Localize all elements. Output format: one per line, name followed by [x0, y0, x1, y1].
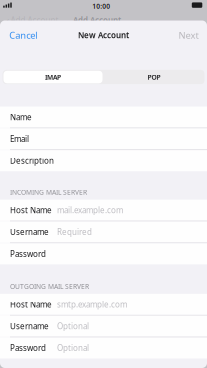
staticText: 10:00 — [92, 2, 110, 11]
staticText: IMAP — [45, 73, 61, 81]
staticText: Description — [10, 155, 54, 166]
button[interactable]: Host Name — [0, 200, 207, 221]
staticText: Required — [57, 227, 92, 237]
button[interactable]: Cancel — [0, 24, 43, 46]
button[interactable]: Password — [0, 337, 207, 358]
staticText: ‹ — [6, 13, 9, 27]
staticText: Host Name — [10, 299, 52, 310]
button[interactable]: Email — [0, 128, 207, 149]
staticText: Next — [178, 29, 198, 41]
staticText: Password — [10, 343, 46, 353]
staticText: POP — [147, 73, 160, 81]
staticText: Add Account — [10, 15, 58, 25]
button[interactable]: Host Name — [0, 294, 207, 315]
staticText: Name — [10, 112, 32, 122]
staticText: smtp.example.com — [57, 299, 127, 310]
button[interactable]: Username — [0, 221, 207, 242]
staticText: Host Name — [10, 205, 52, 215]
staticText: INCOMING MAIL SERVER — [10, 188, 87, 197]
button[interactable]: POP — [103, 70, 204, 84]
staticText: Optional — [57, 321, 89, 331]
staticText: Email — [10, 134, 29, 144]
staticText: OUTGOING MAIL SERVER — [10, 282, 89, 291]
staticText: Optional — [57, 343, 89, 353]
button[interactable]: Next — [172, 24, 207, 46]
button[interactable]: Username — [0, 316, 207, 337]
button[interactable]: IMAP — [2, 70, 103, 84]
staticText: mail.example.com — [57, 205, 123, 215]
button[interactable]: Name — [0, 107, 207, 128]
staticText: Username — [10, 321, 49, 331]
staticText: Username — [10, 227, 49, 237]
staticText: Cancel — [9, 29, 37, 41]
button[interactable]: Password — [0, 243, 207, 264]
staticText: New Account — [78, 30, 129, 40]
button[interactable]: Description — [0, 150, 207, 171]
staticText: Password — [10, 248, 46, 259]
staticText: Add Account — [73, 15, 121, 25]
